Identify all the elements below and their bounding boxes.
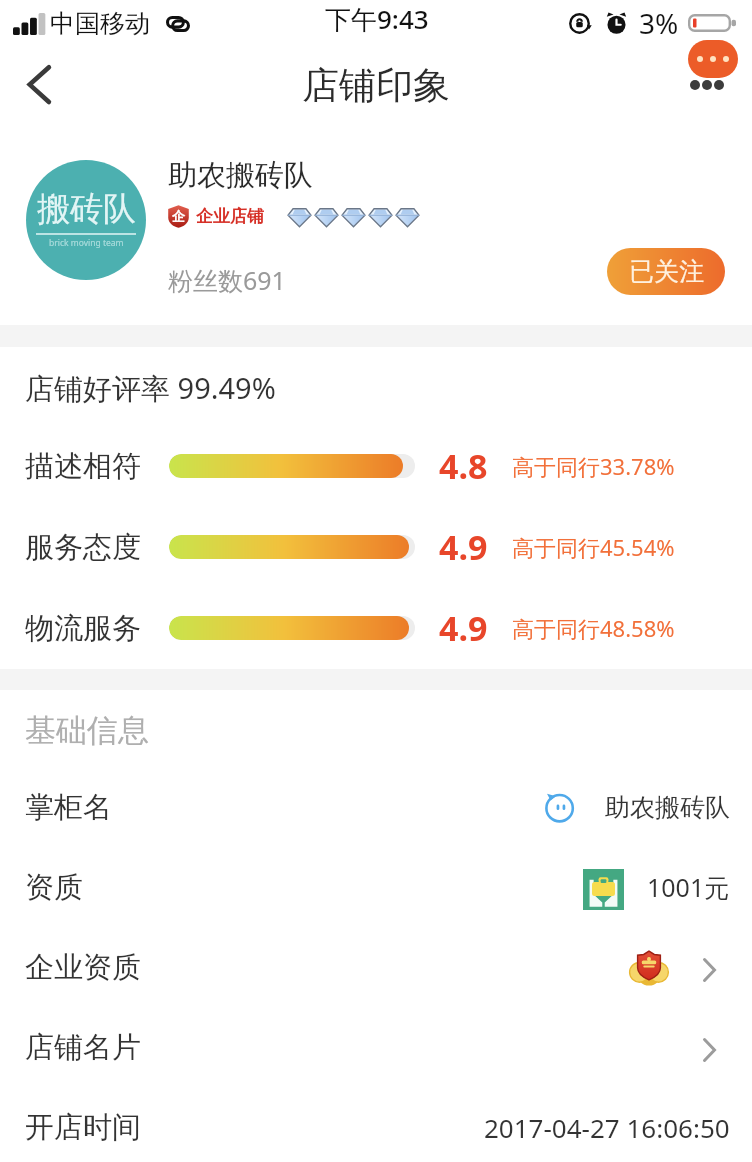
button[interactable]: More options — [688, 40, 738, 90]
staticText: 基础信息 — [25, 711, 149, 750]
button[interactable]: 资质 — [0, 847, 752, 927]
staticText: 1001元 — [647, 870, 730, 904]
staticText: 店铺名片 — [25, 1029, 141, 1066]
staticText: 店铺好评率 99.49% — [25, 368, 276, 408]
staticText: 搬砖队 — [37, 188, 136, 230]
button[interactable]: 企业资质 — [0, 927, 752, 1007]
staticText: 粉丝数691 — [168, 263, 286, 297]
staticText: 企业资质 — [25, 949, 141, 986]
staticText: 物流服务 — [25, 610, 141, 647]
staticText: 4.9 — [439, 605, 488, 651]
staticText: brick moving team — [49, 237, 124, 249]
staticText: 企业店铺 — [196, 206, 264, 227]
button[interactable]: Back — [8, 53, 70, 115]
staticText: 中国移动 — [50, 8, 150, 39]
staticText: 2017-04-27 16:06:50 — [484, 1110, 730, 1145]
staticText: 企 — [172, 208, 185, 224]
staticText: 4.9 — [439, 524, 488, 570]
staticText: 4.8 — [439, 443, 488, 489]
staticText: 服务态度 — [25, 529, 141, 566]
staticText: 已关注 — [629, 256, 704, 287]
staticText: 助农搬砖队 — [605, 792, 730, 823]
staticText: 描述相符 — [25, 448, 141, 485]
staticText: 高于同行48.58% — [512, 613, 675, 643]
button[interactable]: 店铺名片 — [0, 1007, 752, 1087]
staticText: 3% — [639, 4, 679, 42]
staticText: 高于同行45.54% — [512, 532, 675, 562]
staticText: 店铺印象 — [302, 62, 450, 109]
button[interactable]: 开店时间 — [0, 1087, 752, 1162]
staticText: 资质 — [25, 869, 83, 906]
staticText: 下午9:43 — [325, 1, 429, 37]
staticText: 高于同行33.78% — [512, 451, 675, 481]
staticText: 掌柜名 — [25, 789, 112, 826]
button[interactable]: 掌柜名 — [0, 767, 752, 847]
staticText: 开店时间 — [25, 1109, 141, 1146]
staticText: 助农搬砖队 — [168, 157, 313, 194]
button[interactable]: 已关注 — [607, 248, 725, 295]
